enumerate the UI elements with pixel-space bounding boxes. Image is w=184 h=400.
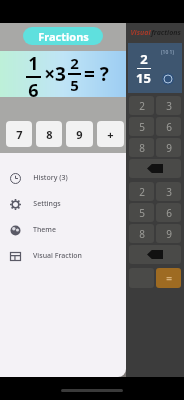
button[interactable]: Visual Fraction [0, 243, 126, 269]
staticText: Visual [130, 28, 151, 38]
staticText: 8 [139, 141, 145, 155]
button[interactable]: = [156, 268, 181, 288]
button[interactable]: 6 [156, 117, 181, 136]
staticText: History (3) [33, 173, 68, 183]
button[interactable]: 5 [129, 203, 154, 222]
button[interactable]: Info [162, 73, 174, 85]
button[interactable]: 5 [129, 117, 154, 136]
button[interactable]: Backspace [129, 159, 181, 178]
staticText: 2 [139, 185, 145, 199]
staticText: Fractions [38, 29, 89, 44]
button[interactable]: Backspace [129, 245, 181, 264]
staticText: 6 [28, 78, 39, 97]
staticText: 9 [166, 141, 172, 155]
staticText: Visual Fraction [33, 251, 82, 261]
staticText: 5 [139, 206, 145, 220]
staticText: 1 [28, 51, 39, 76]
button[interactable]: 2 [129, 182, 154, 201]
button[interactable]: 3 [156, 96, 181, 115]
button[interactable]: 7 [6, 121, 32, 147]
button[interactable]: 9 [156, 138, 181, 157]
staticText: 2 [139, 99, 145, 113]
staticText: + [107, 127, 114, 142]
button[interactable]: 8 [129, 224, 154, 243]
button[interactable]: Settings [0, 191, 126, 217]
staticText: = ? [84, 61, 109, 87]
staticText: 8 [46, 127, 53, 142]
staticText: 9 [166, 227, 172, 241]
staticText: fractions [151, 28, 181, 38]
staticText: = [166, 271, 172, 285]
button[interactable]: Fractions [23, 27, 103, 45]
staticText: 3 [166, 99, 172, 113]
button[interactable]: Theme [0, 217, 126, 243]
staticText: 3 [166, 185, 172, 199]
staticText: 6 [166, 120, 172, 134]
button[interactable]: 2 [129, 96, 154, 115]
staticText: 6 [166, 206, 172, 220]
staticText: 2 [140, 50, 148, 68]
staticText: (10 1) [161, 49, 174, 56]
button[interactable]: 9 [156, 224, 181, 243]
staticText: 9 [76, 127, 83, 142]
staticText: 15 [136, 69, 151, 87]
staticText: 7 [16, 127, 23, 142]
button[interactable]: 6 [156, 203, 181, 222]
button[interactable]: 9 [66, 121, 93, 147]
button[interactable]: 3 [156, 182, 181, 201]
button[interactable]: 2 [128, 43, 182, 93]
staticText: 2 [70, 53, 79, 73]
staticText: Settings [33, 199, 61, 209]
button[interactable]: 8 [129, 138, 154, 157]
staticText: 5 [70, 75, 79, 95]
staticText: 8 [139, 227, 145, 241]
button[interactable]: History (3) [0, 165, 126, 191]
staticText: 5 [139, 120, 145, 134]
staticText: Theme [33, 225, 56, 235]
staticText: ×3 [44, 61, 66, 87]
button[interactable]: + [97, 121, 124, 147]
button[interactable]: 8 [36, 121, 62, 147]
